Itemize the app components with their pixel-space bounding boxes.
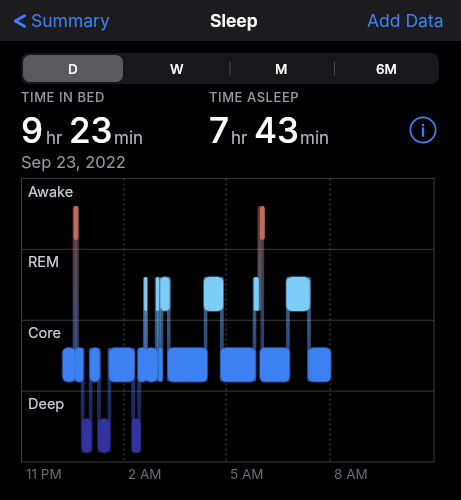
staticText: Core	[28, 324, 61, 342]
staticText: M	[275, 61, 288, 77]
staticText: Sleep	[210, 10, 258, 31]
button[interactable]: W	[127, 55, 227, 82]
staticText: hr	[231, 128, 248, 149]
staticText: 43	[254, 109, 299, 151]
staticText: 8 AM	[334, 466, 368, 482]
staticText: 7	[209, 109, 229, 151]
staticText: Deep	[28, 395, 65, 413]
staticText: Awake	[28, 183, 74, 201]
button[interactable]: Back	[0, 4, 118, 37]
button[interactable]: M	[231, 55, 332, 82]
staticText: 23	[69, 109, 113, 151]
button[interactable]: 6M	[336, 55, 437, 82]
staticText: Sep 23, 2022	[21, 152, 126, 172]
staticText: 2 AM	[128, 466, 162, 482]
staticText: 6M	[376, 61, 397, 77]
staticText: min	[114, 128, 144, 149]
staticText: TIME IN BED	[21, 89, 105, 105]
staticText: hr	[46, 128, 63, 149]
staticText: Add Data	[367, 10, 444, 31]
staticText: Summary	[31, 10, 110, 31]
staticText: W	[170, 61, 184, 77]
staticText: 5 AM	[230, 466, 264, 482]
staticText: REM	[28, 253, 60, 271]
other: Back	[14, 11, 25, 31]
button[interactable]: D	[23, 55, 123, 82]
staticText: TIME ASLEEP	[209, 89, 300, 105]
button[interactable]: Info	[408, 115, 438, 145]
staticText: min	[300, 128, 330, 149]
staticText: 9	[21, 109, 44, 151]
staticText: 11 PM	[26, 466, 62, 482]
staticText: D	[68, 61, 78, 77]
button[interactable]: Add Data	[350, 2, 461, 39]
